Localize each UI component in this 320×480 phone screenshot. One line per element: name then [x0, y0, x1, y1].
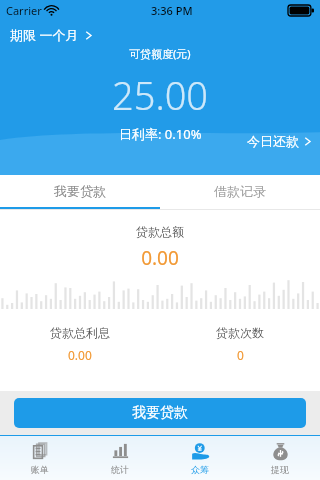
- button[interactable]: 提现: [240, 436, 320, 480]
- staticText: 借款记录: [214, 183, 266, 199]
- staticText: 可贷额度(元): [129, 46, 191, 61]
- button[interactable]: 账单: [0, 436, 80, 480]
- button[interactable]: 贷款总利息: [0, 325, 160, 363]
- staticText: 我要贷款: [132, 404, 188, 422]
- button[interactable]: 我要贷款: [14, 398, 306, 428]
- button[interactable]: 我要贷款: [0, 175, 160, 207]
- staticText: 贷款总额: [0, 224, 320, 239]
- staticText: 25.00: [112, 69, 209, 121]
- button[interactable]: 借款记录: [160, 175, 320, 207]
- staticText: 账单: [31, 464, 49, 475]
- staticText: 贷款总利息: [50, 325, 110, 340]
- staticText: 3:36 PM: [151, 3, 193, 18]
- button[interactable]: 期限 一个月: [10, 26, 93, 44]
- staticText: 日利率: 0.10%: [119, 125, 202, 143]
- staticText: 我要贷款: [54, 183, 106, 199]
- staticText: Carrier: [6, 3, 42, 18]
- button[interactable]: 统计: [80, 436, 160, 480]
- button[interactable]: 贷款次数: [160, 325, 320, 363]
- staticText: 统计: [111, 464, 129, 475]
- staticText: 0.00: [68, 347, 92, 363]
- staticText: 今日还款: [247, 133, 299, 149]
- staticText: 贷款次数: [216, 325, 264, 340]
- staticText: 提现: [271, 464, 289, 475]
- staticText: 0.00: [0, 245, 320, 271]
- staticText: 0: [237, 347, 244, 363]
- staticText: 众筹: [191, 464, 209, 475]
- button[interactable]: 众筹: [160, 436, 240, 480]
- staticText: 期限 一个月: [10, 26, 79, 44]
- button[interactable]: 今日还款: [247, 133, 312, 149]
